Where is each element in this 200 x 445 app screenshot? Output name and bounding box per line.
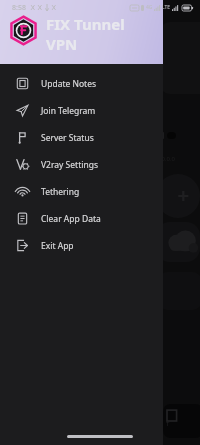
staticText: FIX Tunnel [46,14,125,34]
staticText: V2ray Settings [41,159,98,171]
button[interactable]: Exit App [0,232,163,259]
staticText: Update Notes [41,78,97,90]
other: Join Telegram [16,104,29,117]
other: V2ray Settings [16,158,29,171]
staticText: LTE [162,4,171,11]
button[interactable]: Tethering [0,178,163,205]
staticText: 8:58 [12,3,26,13]
button[interactable]: Clear App Data [0,205,163,232]
staticText: Join Telegram [41,105,96,117]
button[interactable]: Join Telegram [0,97,163,124]
staticText: 4G [146,4,153,11]
staticText: Tethering [41,186,80,198]
other: Tethering [16,185,29,198]
staticText: 10.0.0 [158,155,175,163]
other: Clear App Data [16,212,29,225]
other: Exit App [16,239,29,252]
button[interactable]: V2ray Settings [0,151,163,178]
button[interactable]: Update Notes [0,70,163,97]
staticText: Server Status [41,132,94,144]
staticText: T [166,420,170,428]
staticText: VPN [46,34,78,54]
button[interactable]: Server Status [0,124,163,151]
staticText: Clear App Data [41,213,101,225]
other: Update Notes [16,77,29,90]
staticText: Exit App [41,240,74,252]
other: Server Status [16,131,29,144]
